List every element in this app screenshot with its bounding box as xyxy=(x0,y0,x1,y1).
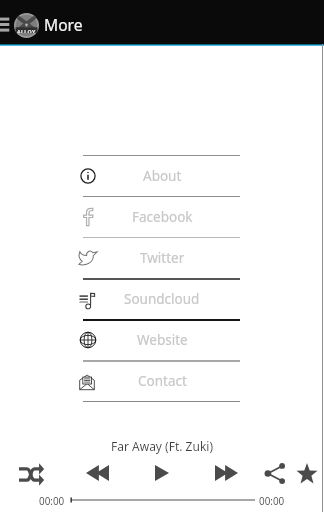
button[interactable]: Soundcloud xyxy=(0,279,324,319)
staticText: Website xyxy=(137,331,188,349)
staticText: Twitter xyxy=(140,249,185,267)
staticText: 00:00 xyxy=(39,494,65,506)
button[interactable]: About xyxy=(0,156,324,196)
staticText: Soundcloud xyxy=(124,290,200,308)
button[interactable]: Shuffle xyxy=(10,459,54,489)
button[interactable]: Next xyxy=(203,458,249,488)
button[interactable]: Share xyxy=(261,458,289,488)
staticText: About xyxy=(143,167,182,185)
button[interactable]: Contact xyxy=(0,361,324,401)
button[interactable]: Twitter xyxy=(0,238,324,278)
staticText: More xyxy=(44,14,83,35)
button[interactable]: Website xyxy=(0,320,324,360)
button[interactable]: Open navigation menu xyxy=(0,2,14,45)
staticText: Contact xyxy=(138,372,187,390)
button[interactable]: Facebook xyxy=(0,197,324,237)
staticText: Facebook xyxy=(132,208,193,226)
staticText: Far Away (Ft. Zuki) xyxy=(111,438,213,454)
button[interactable]: Favorite xyxy=(293,458,321,488)
button[interactable]: Play xyxy=(137,458,187,488)
staticText: ALLOY xyxy=(17,28,36,33)
button[interactable]: Previous xyxy=(72,458,122,488)
staticText: 00:00 xyxy=(259,494,285,506)
